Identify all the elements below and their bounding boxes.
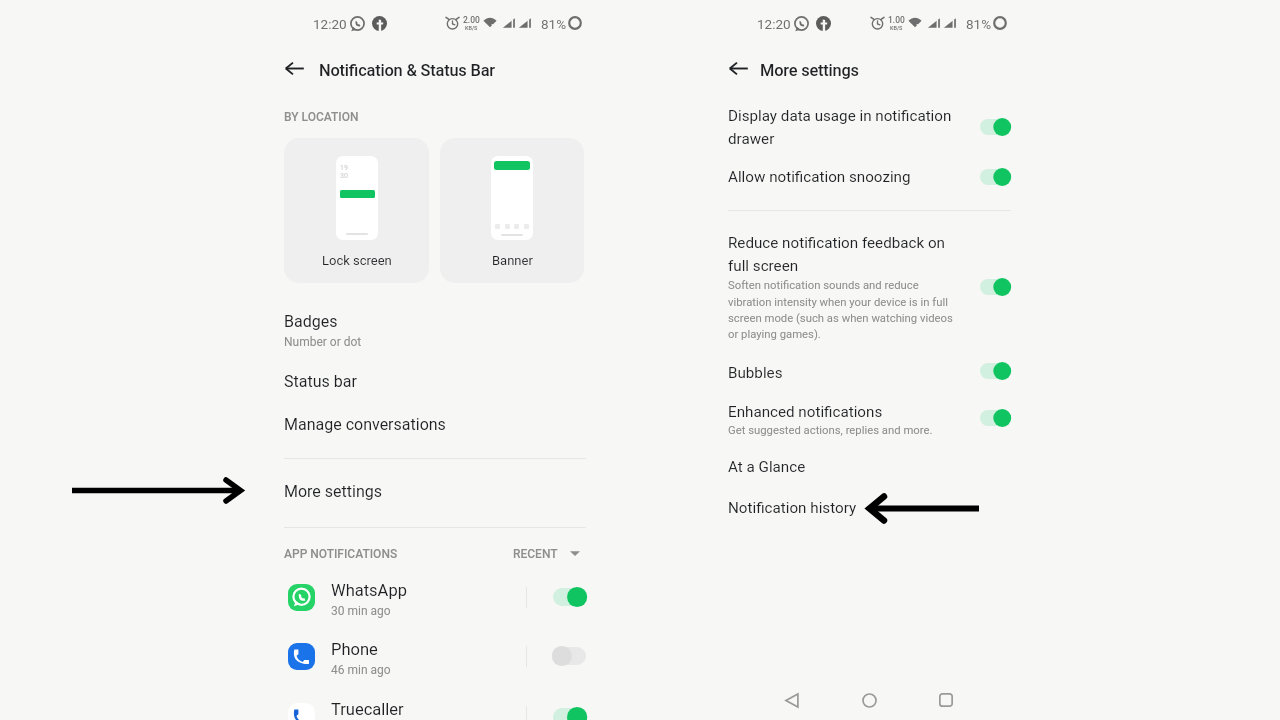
- staticText: 2.00: [463, 15, 480, 25]
- button[interactable]: [722, 357, 1017, 392]
- button[interactable]: [722, 161, 1017, 196]
- button[interactable]: [276, 305, 594, 347]
- button[interactable]: [280, 628, 590, 684]
- button[interactable]: Back: [777, 685, 807, 715]
- button[interactable]: Switch on: [980, 169, 1010, 185]
- button[interactable]: 19 30: [284, 138, 429, 283]
- staticText: At a Glance: [728, 458, 806, 476]
- button[interactable]: [276, 365, 594, 397]
- staticText: Manage conversations: [284, 415, 446, 434]
- staticText: Notification & Status Bar: [319, 61, 495, 80]
- staticText: Allow notification snoozing: [728, 168, 960, 186]
- staticText: Lock screen: [322, 253, 392, 268]
- button[interactable]: [722, 397, 1017, 490]
- staticText: RECENT: [513, 547, 558, 561]
- button[interactable]: Switch off: [553, 647, 586, 665]
- staticText: More settings: [284, 482, 382, 501]
- staticText: WhatsApp: [331, 581, 407, 600]
- staticText: Reduce notification feedback on full scr…: [728, 234, 960, 275]
- staticText: 1.00: [888, 15, 905, 25]
- button[interactable]: [280, 689, 590, 720]
- staticText: Number or dot: [284, 335, 362, 349]
- staticText: 81%: [966, 16, 992, 32]
- button[interactable]: Back: [725, 55, 751, 81]
- staticText: KB/S: [890, 25, 903, 31]
- staticText: 81%: [541, 16, 567, 32]
- staticText: APP NOTIFICATIONS: [284, 547, 398, 561]
- staticText: Enhanced notifications: [728, 403, 960, 421]
- button[interactable]: [276, 475, 594, 507]
- button[interactable]: Back: [281, 55, 307, 81]
- staticText: Status bar: [284, 372, 357, 391]
- button[interactable]: Home: [854, 685, 884, 715]
- button[interactable]: [280, 569, 590, 625]
- staticText: 12:20: [313, 16, 347, 32]
- button[interactable]: Banner: [440, 138, 584, 283]
- staticText: 19 30: [340, 164, 348, 180]
- button[interactable]: Switch on: [980, 363, 1010, 379]
- button[interactable]: Switch on: [980, 279, 1010, 295]
- button[interactable]: [722, 492, 1017, 524]
- staticText: More settings: [760, 61, 859, 80]
- staticText: Phone: [331, 640, 378, 659]
- button[interactable]: [505, 542, 587, 566]
- staticText: Get suggested actions, replies and more.: [728, 424, 960, 437]
- button[interactable]: [722, 227, 1017, 342]
- button[interactable]: Switch on: [553, 588, 586, 606]
- staticText: Truecaller: [331, 700, 404, 719]
- staticText: Banner: [492, 253, 533, 268]
- staticText: KB/S: [465, 25, 478, 31]
- staticText: Display data usage in notification drawe…: [728, 107, 960, 148]
- button[interactable]: Switch on: [980, 410, 1010, 426]
- button[interactable]: Switch on: [553, 708, 586, 720]
- staticText: Notification history: [728, 499, 857, 517]
- staticText: Soften notification sounds and reduce vi…: [728, 279, 956, 341]
- button[interactable]: Switch on: [980, 119, 1010, 135]
- button[interactable]: [722, 100, 1017, 157]
- button[interactable]: [722, 451, 1017, 483]
- staticText: BY LOCATION: [284, 110, 359, 124]
- staticText: Bubbles: [728, 364, 960, 382]
- button[interactable]: [276, 408, 594, 440]
- staticText: 46 min ago: [331, 663, 391, 677]
- button[interactable]: Recents: [931, 685, 961, 715]
- staticText: Badges: [284, 312, 338, 331]
- staticText: 30 min ago: [331, 604, 391, 618]
- staticText: 12:20: [757, 16, 791, 32]
